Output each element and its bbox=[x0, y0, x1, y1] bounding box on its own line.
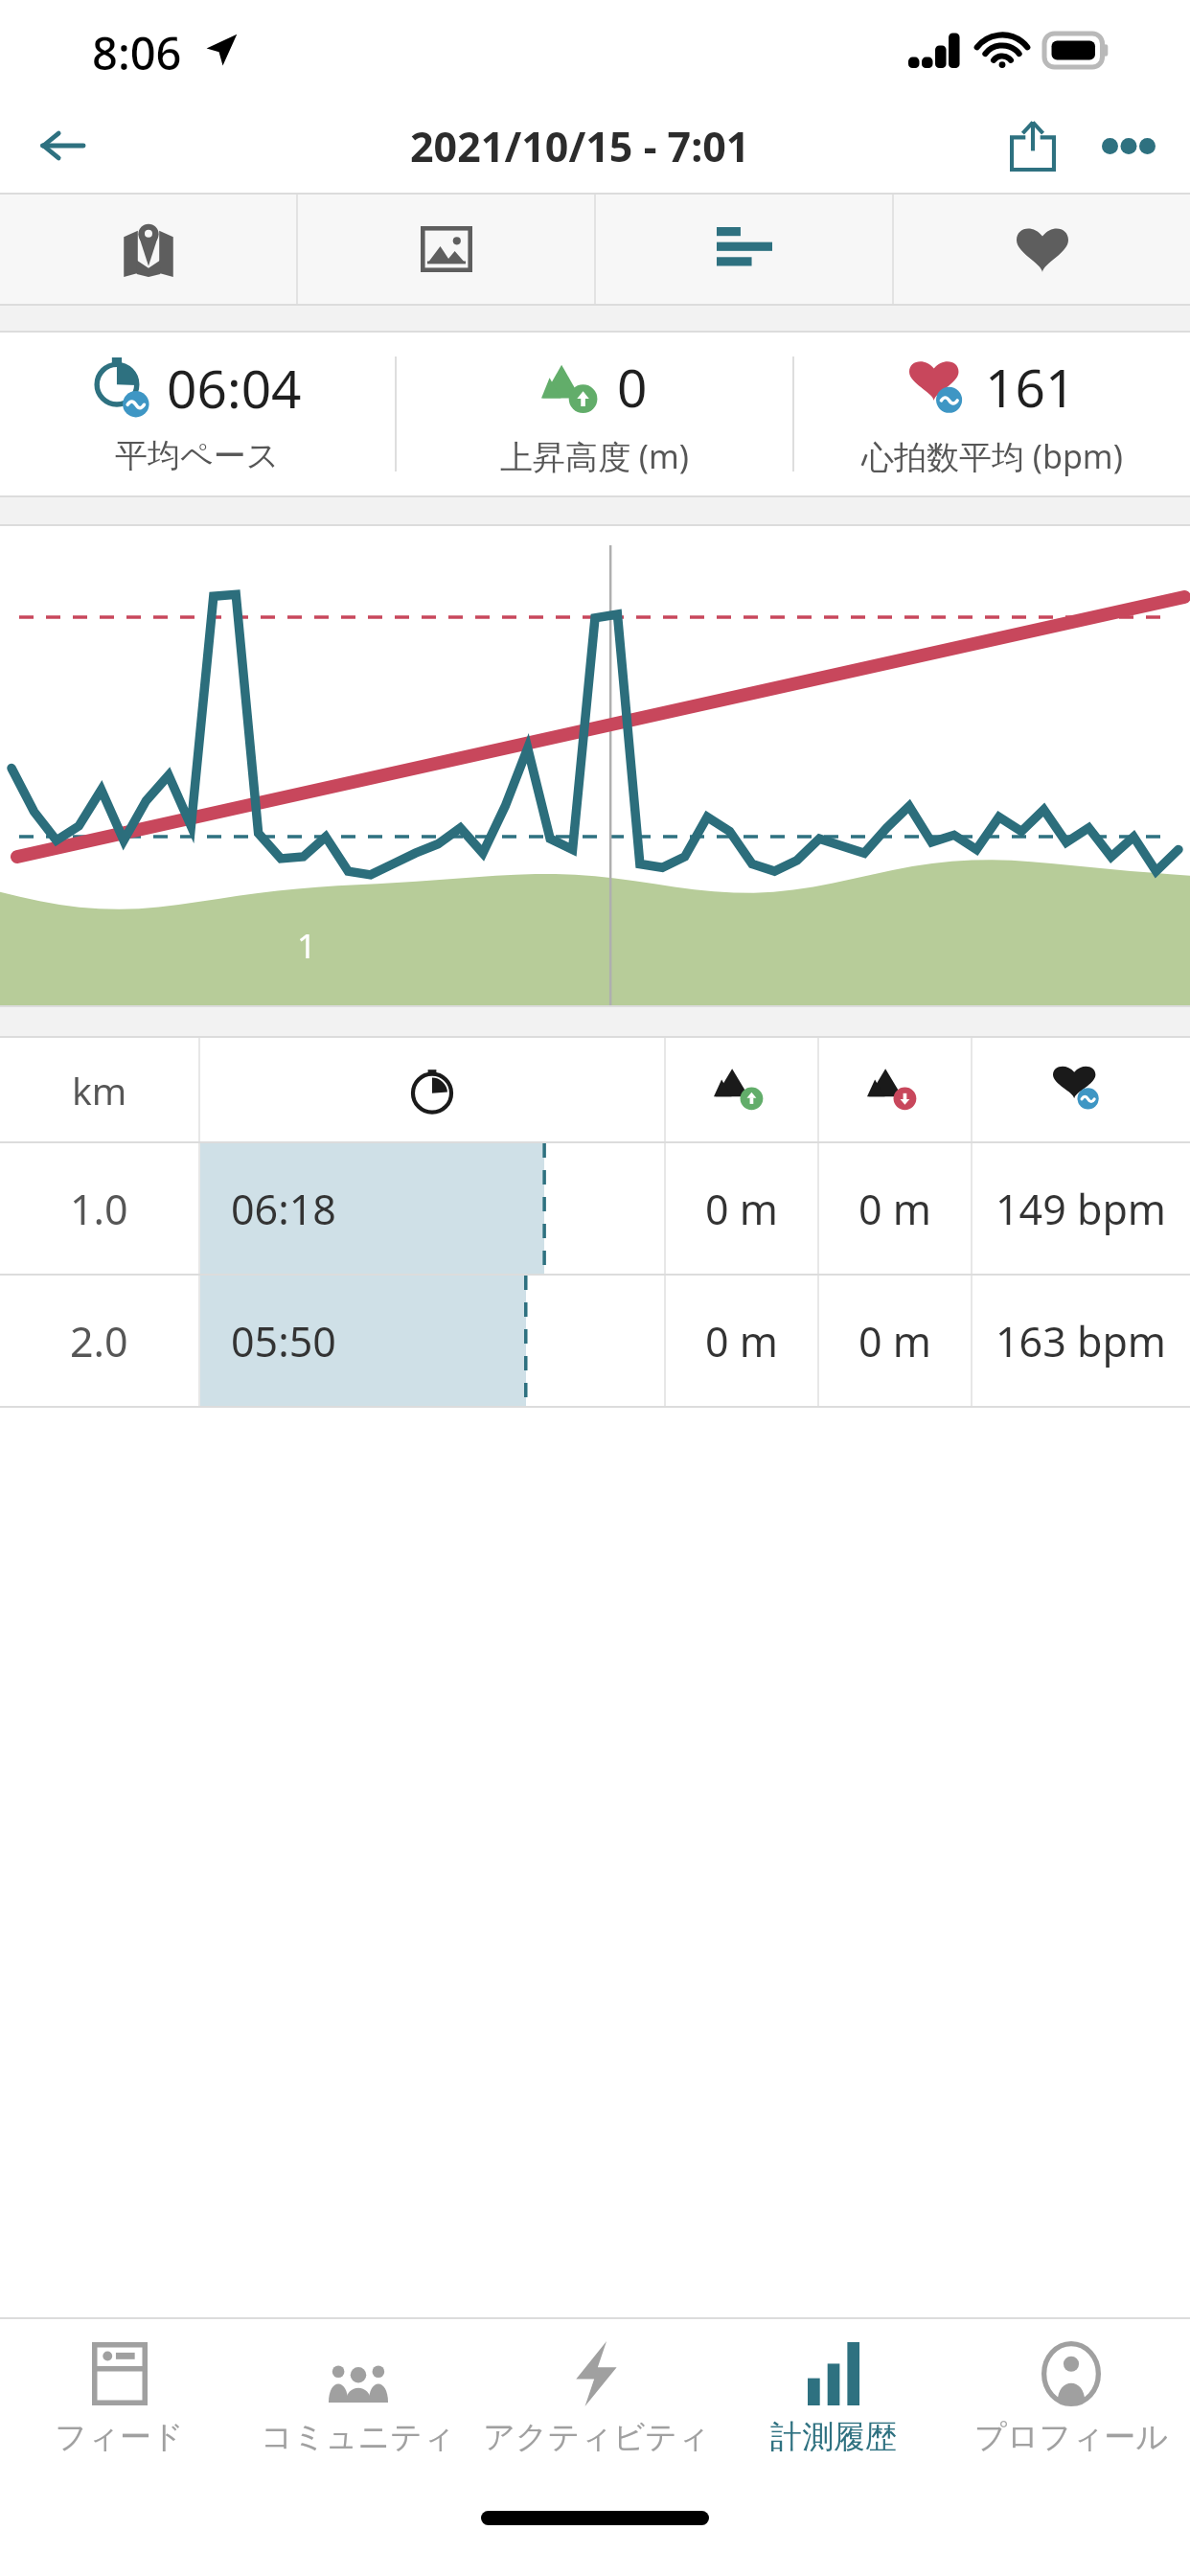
staticText: 05:50 bbox=[231, 1313, 336, 1369]
button[interactable]: Share bbox=[985, 99, 1081, 193]
button[interactable]: Graphs bbox=[596, 195, 892, 304]
staticText: アクティビティ bbox=[483, 2417, 710, 2457]
staticText: 0 m bbox=[705, 1313, 778, 1369]
staticText: 計測履歴 bbox=[770, 2417, 897, 2457]
staticText: コミュニティ bbox=[261, 2417, 455, 2457]
button[interactable]: Heart rate bbox=[894, 195, 1190, 304]
staticText: 心拍数平均 (bpm) bbox=[861, 434, 1123, 478]
staticText: 0 m bbox=[858, 1181, 931, 1237]
button[interactable]: 161 bbox=[794, 333, 1190, 495]
staticText: 0 m bbox=[858, 1313, 931, 1369]
staticText: 0 bbox=[617, 351, 648, 423]
staticText: 149 bpm bbox=[995, 1181, 1167, 1237]
button[interactable]: コミュニティ bbox=[239, 2319, 477, 2484]
button[interactable] bbox=[0, 526, 1190, 1005]
button[interactable]: 1.0 bbox=[0, 1143, 1190, 1274]
button[interactable]: Map bbox=[0, 195, 296, 304]
button[interactable]: Back bbox=[21, 104, 103, 187]
button[interactable]: プロフィール bbox=[952, 2319, 1190, 2484]
staticText: 2.0 bbox=[70, 1313, 128, 1369]
button[interactable]: アクティビティ bbox=[477, 2319, 715, 2484]
staticText: 平均ペース bbox=[115, 435, 280, 476]
staticText: 8:06 bbox=[92, 22, 182, 83]
button[interactable]: 06:04 bbox=[0, 333, 395, 495]
staticText: 上昇高度 (m) bbox=[500, 434, 690, 478]
staticText: 06:04 bbox=[167, 352, 302, 424]
button[interactable]: 2.0 bbox=[0, 1276, 1190, 1406]
button[interactable]: Photos bbox=[298, 195, 594, 304]
staticText: 1 bbox=[297, 923, 317, 969]
staticText: 161 bbox=[985, 351, 1076, 423]
staticText: 0 m bbox=[705, 1181, 778, 1237]
button[interactable]: More options bbox=[1081, 99, 1177, 193]
button[interactable]: フィード bbox=[0, 2319, 239, 2484]
staticText: 2021/10/15 - 7:01 bbox=[410, 118, 750, 174]
staticText: フィード bbox=[55, 2417, 184, 2457]
staticText: 06:18 bbox=[231, 1181, 336, 1237]
staticText: km bbox=[72, 1065, 127, 1115]
staticText: 1.0 bbox=[70, 1181, 128, 1237]
button[interactable]: 0 bbox=[397, 333, 792, 495]
staticText: プロフィール bbox=[974, 2417, 1168, 2457]
staticText: 163 bpm bbox=[995, 1313, 1167, 1369]
button[interactable]: 計測履歴 bbox=[715, 2319, 952, 2484]
